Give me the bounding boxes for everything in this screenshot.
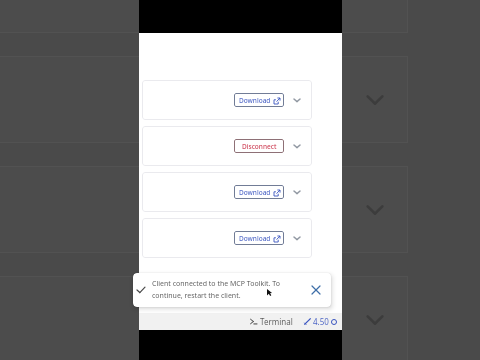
button[interactable]: Expand bbox=[290, 93, 304, 107]
staticText: Download bbox=[239, 234, 271, 243]
staticText: Terminal bbox=[260, 316, 293, 327]
staticText: Disconnect bbox=[242, 142, 277, 151]
button[interactable]: Close bbox=[308, 282, 324, 298]
button[interactable]: Disconnect bbox=[142, 126, 312, 166]
button[interactable]: Download bbox=[234, 231, 284, 245]
button[interactable]: Expand bbox=[290, 139, 304, 153]
staticText: Download bbox=[239, 96, 271, 105]
button[interactable]: 4.50 bbox=[301, 313, 340, 330]
button[interactable]: Expand bbox=[290, 185, 304, 199]
staticText: Client connected to the MCP Toolkit. To … bbox=[152, 279, 292, 300]
button[interactable]: Download bbox=[142, 218, 312, 258]
button[interactable]: Download bbox=[142, 172, 312, 212]
button[interactable]: Download bbox=[234, 93, 284, 107]
button[interactable]: Expand bbox=[290, 231, 304, 245]
staticText: 4.50 bbox=[313, 316, 329, 327]
button[interactable]: Terminal bbox=[247, 313, 296, 330]
staticText: Download bbox=[239, 188, 271, 197]
button[interactable]: Download bbox=[142, 80, 312, 120]
button[interactable]: Disconnect bbox=[234, 139, 284, 153]
button[interactable]: Download bbox=[234, 185, 284, 199]
